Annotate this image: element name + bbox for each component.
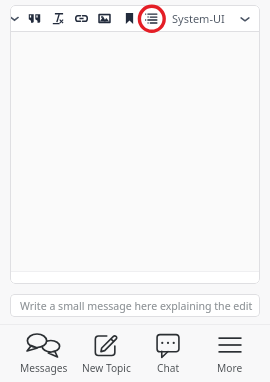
button[interactable]: Messages	[12, 325, 75, 382]
button[interactable]: Insert image	[95, 9, 113, 27]
button[interactable]: Bulleted list	[142, 9, 160, 27]
button[interactable]: New Topic	[75, 325, 137, 382]
button[interactable]: Chat	[137, 325, 199, 382]
staticText: Write a small message here explaining th…	[20, 299, 253, 313]
staticText: System-UI	[172, 11, 225, 26]
staticText: Messages	[20, 361, 68, 375]
button[interactable]: Collapse composer	[10, 9, 23, 27]
button[interactable]: Clear formatting	[48, 9, 66, 27]
button[interactable]: Quote	[25, 9, 43, 27]
staticText: Chat	[157, 361, 180, 375]
button[interactable]: Bookmark	[120, 9, 138, 27]
button[interactable]: Write a small message here explaining th…	[10, 294, 260, 317]
button[interactable]: More	[199, 325, 261, 382]
staticText: More	[217, 361, 243, 375]
button[interactable]: Insert link	[72, 9, 90, 27]
staticText: New Topic	[82, 361, 131, 375]
button[interactable]: System-UI	[172, 11, 255, 26]
